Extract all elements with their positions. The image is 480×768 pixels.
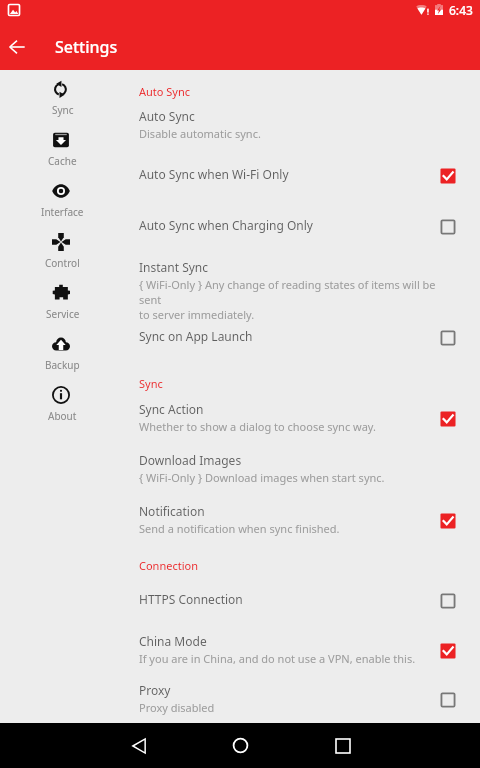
staticText: Backup bbox=[45, 358, 80, 372]
button[interactable]: Unchecked bbox=[438, 328, 458, 348]
staticText: 6:43 bbox=[449, 2, 473, 18]
staticText: Connection bbox=[139, 558, 198, 573]
staticText: Sync bbox=[139, 376, 163, 391]
staticText: Sync on App Launch bbox=[139, 328, 253, 344]
staticText: Proxy disabled bbox=[139, 700, 215, 715]
staticText: HTTPS Connection bbox=[139, 591, 243, 607]
staticText: Auto Sync bbox=[139, 84, 191, 99]
button[interactable]: Checked bbox=[438, 166, 458, 186]
staticText: Control bbox=[45, 256, 80, 270]
staticText: China Mode bbox=[139, 633, 207, 649]
button[interactable]: Notification bbox=[125, 489, 480, 544]
staticText: Whether to show a dialog to choose sync … bbox=[139, 419, 376, 434]
staticText: Download Images bbox=[139, 452, 242, 468]
button[interactable]: Cache bbox=[0, 121, 125, 172]
staticText: Disable automatic sync. bbox=[139, 126, 261, 141]
button[interactable]: About bbox=[0, 376, 125, 427]
button[interactable]: China Mode bbox=[125, 619, 480, 668]
button[interactable]: Instant Sync bbox=[125, 245, 480, 314]
staticText: Proxy bbox=[139, 682, 171, 698]
button[interactable]: Auto Sync when Charging Only bbox=[125, 203, 480, 245]
button[interactable]: Service bbox=[0, 274, 125, 325]
staticText: Sync bbox=[52, 103, 74, 117]
staticText: { WiFi-Only } Any change of reading stat… bbox=[139, 277, 458, 322]
button[interactable]: Download Images bbox=[125, 438, 480, 489]
staticText: Auto Sync when Wi-Fi Only bbox=[139, 166, 289, 182]
button[interactable]: Sync bbox=[0, 70, 125, 121]
staticText: Send a notification when sync finished. bbox=[139, 521, 340, 536]
button[interactable]: Control bbox=[0, 223, 125, 274]
button[interactable]: Back bbox=[116, 723, 161, 768]
button[interactable]: Recents bbox=[320, 723, 365, 768]
button[interactable]: Unchecked bbox=[438, 690, 458, 710]
button[interactable]: Checked bbox=[438, 409, 458, 429]
button[interactable]: Checked bbox=[438, 641, 458, 661]
button[interactable]: Back bbox=[9, 24, 56, 70]
button[interactable]: Unchecked bbox=[438, 591, 458, 611]
staticText: Auto Sync when Charging Only bbox=[139, 217, 313, 233]
button[interactable]: Sync Action bbox=[125, 387, 480, 438]
staticText: Sync Action bbox=[139, 401, 204, 417]
staticText: If you are in China, and do not use a VP… bbox=[139, 651, 416, 666]
button[interactable]: Proxy bbox=[125, 668, 480, 713]
button[interactable]: Auto Sync bbox=[125, 94, 480, 152]
staticText: Service bbox=[46, 307, 80, 321]
staticText: Auto Sync bbox=[139, 108, 195, 124]
staticText: Settings bbox=[55, 36, 118, 58]
staticText: About bbox=[48, 409, 77, 423]
staticText: Cache bbox=[48, 154, 77, 168]
button[interactable]: Auto Sync when Wi-Fi Only bbox=[125, 152, 480, 203]
staticText: { WiFi-Only } Download images when start… bbox=[139, 470, 385, 485]
button[interactable]: HTTPS Connection bbox=[125, 577, 480, 619]
staticText: Notification bbox=[139, 503, 205, 519]
staticText: Instant Sync bbox=[139, 259, 209, 275]
button[interactable]: Interface bbox=[0, 172, 125, 223]
button[interactable]: Unchecked bbox=[438, 217, 458, 237]
staticText: Interface bbox=[41, 205, 84, 219]
button[interactable]: Backup bbox=[0, 325, 125, 376]
button[interactable]: Sync on App Launch bbox=[125, 314, 480, 362]
button[interactable]: Checked bbox=[438, 511, 458, 531]
button[interactable]: Home bbox=[218, 723, 263, 768]
